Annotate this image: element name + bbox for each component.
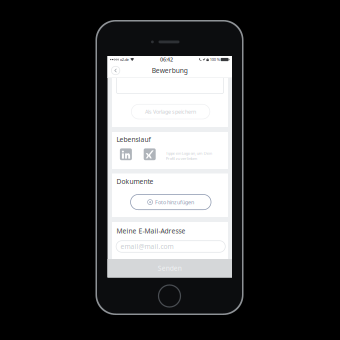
staticText: Dokumente — [116, 177, 153, 186]
staticText: o2-de — [120, 57, 129, 62]
staticText: Foto hinzufügen — [155, 199, 194, 206]
staticText: email@mail.com — [120, 242, 173, 251]
button[interactable]: Als Vorlage speichern — [131, 104, 210, 119]
staticText: Bewerbung — [152, 66, 188, 75]
staticText: Senden — [158, 264, 182, 273]
button[interactable]: Foto hinzufügen — [131, 194, 211, 210]
button[interactable]: email@mail.com — [116, 241, 225, 252]
button[interactable]: Xing — [144, 148, 156, 160]
staticText: Tippe ein Logo an, um Dein Profil zu ver… — [166, 150, 212, 161]
staticText: 100 % — [210, 57, 220, 62]
staticText: Meine E-Mail-Adresse — [116, 227, 185, 235]
button[interactable]: Senden — [107, 259, 232, 277]
staticText: Als Vorlage speichern — [145, 108, 196, 115]
button[interactable]: Back — [109, 64, 122, 77]
staticText: 06:42 — [160, 56, 173, 63]
button[interactable]: LinkedIn — [120, 148, 132, 160]
staticText: Lebenslauf — [116, 135, 150, 144]
